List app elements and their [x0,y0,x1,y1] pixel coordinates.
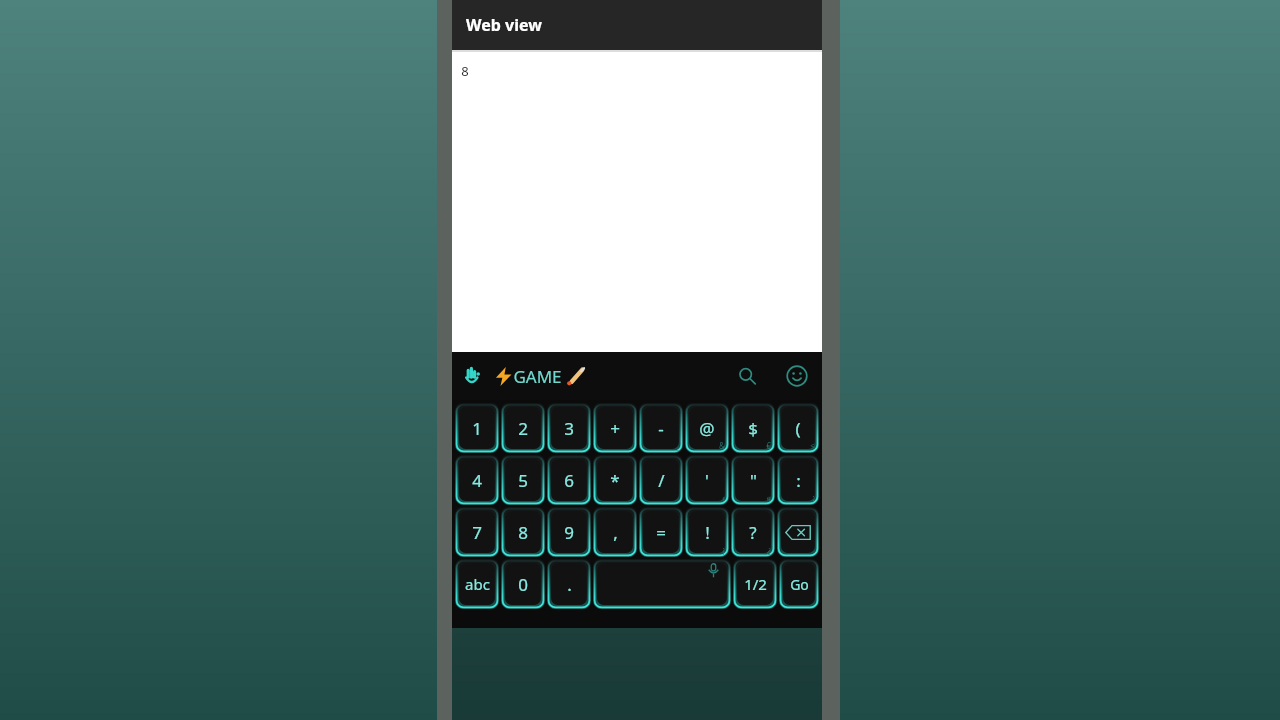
staticText: « [766,492,771,503]
button[interactable]: / [639,455,683,505]
button[interactable]: Emoji [772,352,822,400]
staticText: ! [705,521,710,544]
staticText: " [750,469,757,492]
staticText: 5 [518,469,528,492]
button[interactable]: * [593,455,637,505]
button[interactable]: abc [455,559,499,609]
button[interactable]: 1/2 [733,559,777,609]
button[interactable]: 0 [501,559,545,609]
staticText: ; [812,492,815,503]
staticText: - [658,417,664,440]
button[interactable]: 1 [455,403,499,453]
staticText: $ [748,417,758,440]
staticText: GAME [513,365,562,388]
button[interactable]: 7 [455,507,499,557]
staticText: , [613,521,618,544]
staticText: ¿ [767,544,771,555]
staticText: 6 [564,469,574,492]
button[interactable]: @ [685,403,729,453]
button[interactable]: 8 [501,507,545,557]
button[interactable]: Go [779,559,819,609]
button[interactable]: GAME [494,352,585,400]
button[interactable]: . [547,559,591,609]
staticText: 9 [564,521,574,544]
staticText: @ [699,417,715,440]
staticText: € [766,440,771,451]
button[interactable]: " [731,455,775,505]
staticText: 8 [518,521,528,544]
button[interactable]: , [593,507,637,557]
staticText: + [610,417,620,440]
staticText: < [810,440,815,451]
staticText: 1 [472,417,482,440]
button[interactable]: ? [731,507,775,557]
button[interactable]: 9 [547,507,591,557]
button[interactable]: $ [731,403,775,453]
button[interactable]: = [639,507,683,557]
button[interactable]: Search [722,352,772,400]
staticText: : [796,469,801,492]
staticText: * [610,469,620,492]
button[interactable]: Web view [452,0,822,50]
button[interactable]: Keyboard settings [452,352,494,400]
button[interactable]: Space [593,559,731,609]
button[interactable]: 4 [455,455,499,505]
staticText: ( [795,417,801,440]
button[interactable]: ! [685,507,729,557]
staticText: 1/2 [744,574,767,594]
button[interactable]: 5 [501,455,545,505]
staticText: ¡ [722,544,725,555]
staticText: _ [675,440,679,451]
staticText: 8 [461,62,469,80]
button[interactable]: + [593,403,637,453]
staticText: . [567,573,572,596]
staticText: / [658,469,665,492]
staticText: abc [465,574,490,594]
button[interactable]: 6 [547,455,591,505]
button[interactable]: Backspace [777,507,819,557]
button[interactable]: - [639,403,683,453]
staticText: Go [790,575,809,594]
button[interactable]: 2 [501,403,545,453]
button[interactable]: ( [777,403,819,453]
staticText: ‹ [722,492,725,503]
staticText: ' [705,469,709,492]
staticText: 2 [518,417,528,440]
staticText: ? [749,521,757,544]
staticText: & [719,440,725,451]
staticText: = [656,521,666,544]
button[interactable]: ' [685,455,729,505]
button[interactable]: 3 [547,403,591,453]
staticText: 7 [472,521,482,544]
staticText: 4 [472,469,482,492]
staticText: 0 [518,573,528,596]
button[interactable]: : [777,455,819,505]
staticText: Web view [466,14,542,36]
staticText: 3 [564,417,574,440]
